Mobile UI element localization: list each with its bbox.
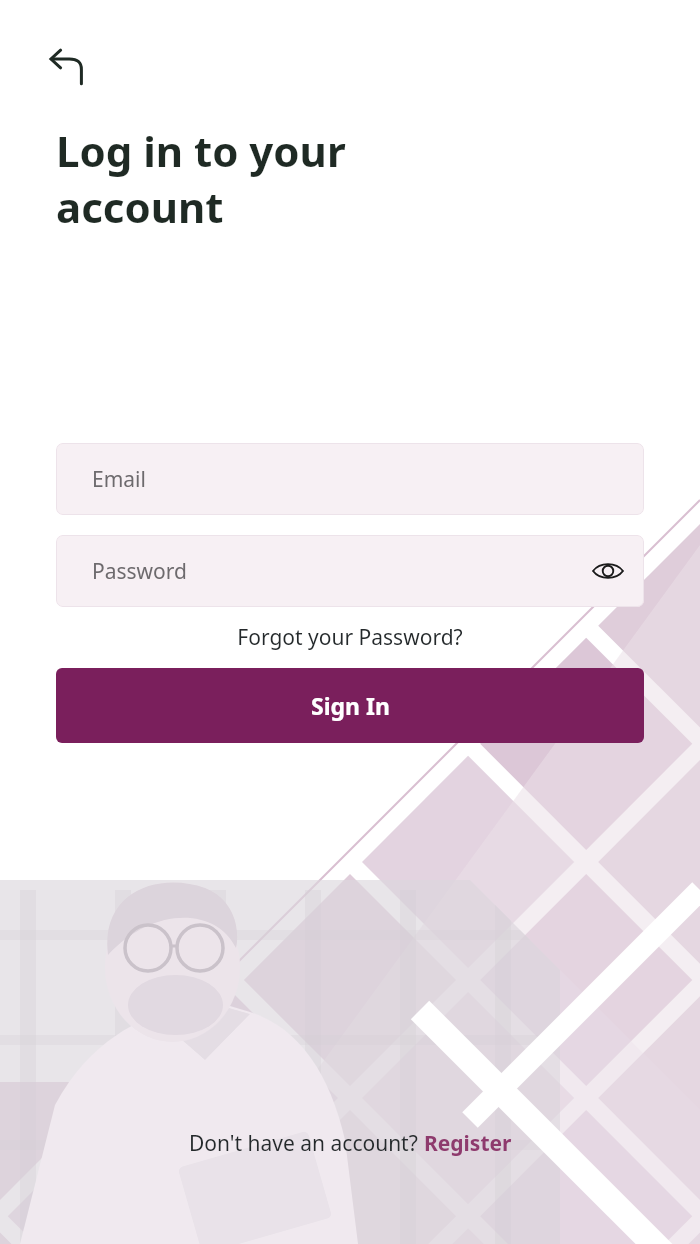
- staticText: Register: [424, 1129, 512, 1158]
- button[interactable]: Back: [38, 38, 96, 96]
- staticText: Password: [92, 557, 187, 586]
- button[interactable]: Email: [56, 443, 644, 515]
- button[interactable]: Forgot your Password?: [0, 623, 700, 652]
- button[interactable]: Password: [56, 535, 644, 607]
- button[interactable]: Register: [424, 1129, 512, 1158]
- button[interactable]: Sign In: [56, 668, 644, 743]
- staticText: Log in to your account: [56, 122, 346, 235]
- staticText: Sign In: [311, 690, 390, 721]
- staticText: Email: [92, 465, 146, 494]
- button[interactable]: Show password: [584, 547, 632, 595]
- staticText: Don't have an account?: [189, 1129, 424, 1158]
- staticText: Forgot your Password?: [237, 623, 463, 652]
